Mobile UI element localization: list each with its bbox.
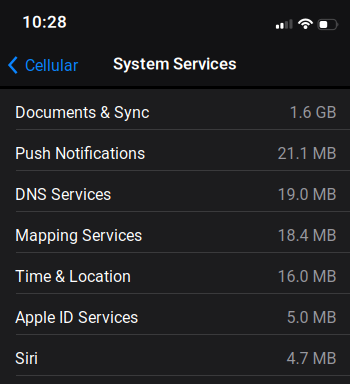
staticText: 10:28: [22, 12, 67, 32]
staticText: Documents & Sync: [15, 103, 149, 122]
button[interactable]: Siri: [0, 335, 350, 376]
staticText: 19.0 MB: [277, 185, 336, 204]
button[interactable]: Documents & Sync: [0, 89, 350, 130]
button[interactable]: Mapping Services: [0, 212, 350, 253]
staticText: Time & Location: [15, 267, 131, 286]
button[interactable]: Back: [0, 55, 78, 75]
staticText: Cellular: [25, 56, 78, 75]
button[interactable]: Time & Location: [0, 253, 350, 294]
staticText: 1.6 GB: [289, 103, 336, 122]
button[interactable]: DNS Services: [0, 171, 350, 212]
staticText: System Services: [113, 54, 237, 73]
staticText: 18.4 MB: [277, 226, 336, 245]
staticText: Push Notifications: [15, 144, 145, 163]
staticText: 21.1 MB: [277, 144, 336, 163]
staticText: Mapping Services: [15, 226, 142, 245]
button[interactable]: Apple ID Services: [0, 294, 350, 335]
staticText: 4.7 MB: [286, 349, 336, 368]
staticText: Siri: [15, 349, 38, 368]
staticText: 5.0 MB: [286, 308, 336, 327]
staticText: 16.0 MB: [277, 267, 336, 286]
button[interactable]: Push Notifications: [0, 130, 350, 171]
staticText: DNS Services: [15, 185, 111, 204]
staticText: Apple ID Services: [15, 308, 138, 327]
